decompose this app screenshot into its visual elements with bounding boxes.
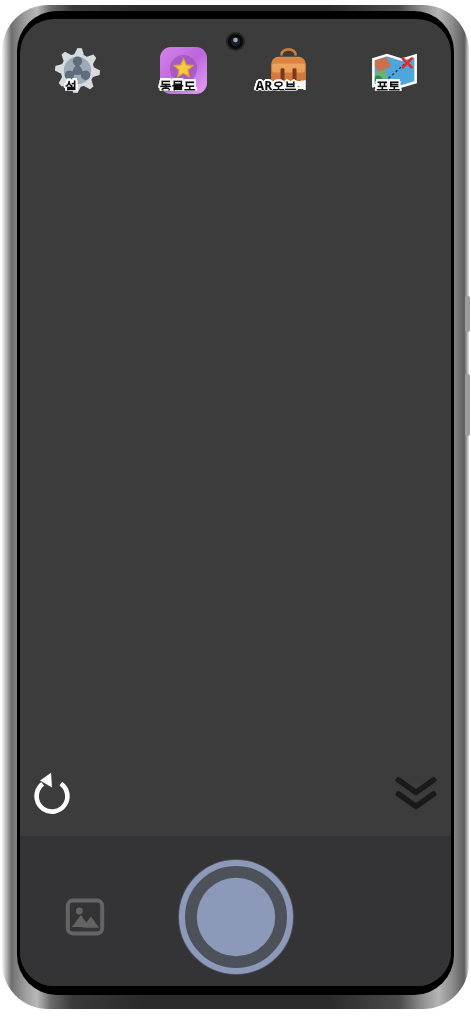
button[interactable]: Collapse panel <box>385 763 447 825</box>
button[interactable] <box>133 47 233 109</box>
button[interactable]: Volume <box>465 296 470 332</box>
button[interactable] <box>238 47 338 109</box>
button[interactable] <box>344 47 444 109</box>
button[interactable] <box>27 47 127 109</box>
button[interactable]: Take photo <box>177 858 295 976</box>
button[interactable]: Power <box>465 374 470 436</box>
button[interactable]: Gallery <box>58 890 112 944</box>
button[interactable]: Reset view <box>24 766 80 822</box>
